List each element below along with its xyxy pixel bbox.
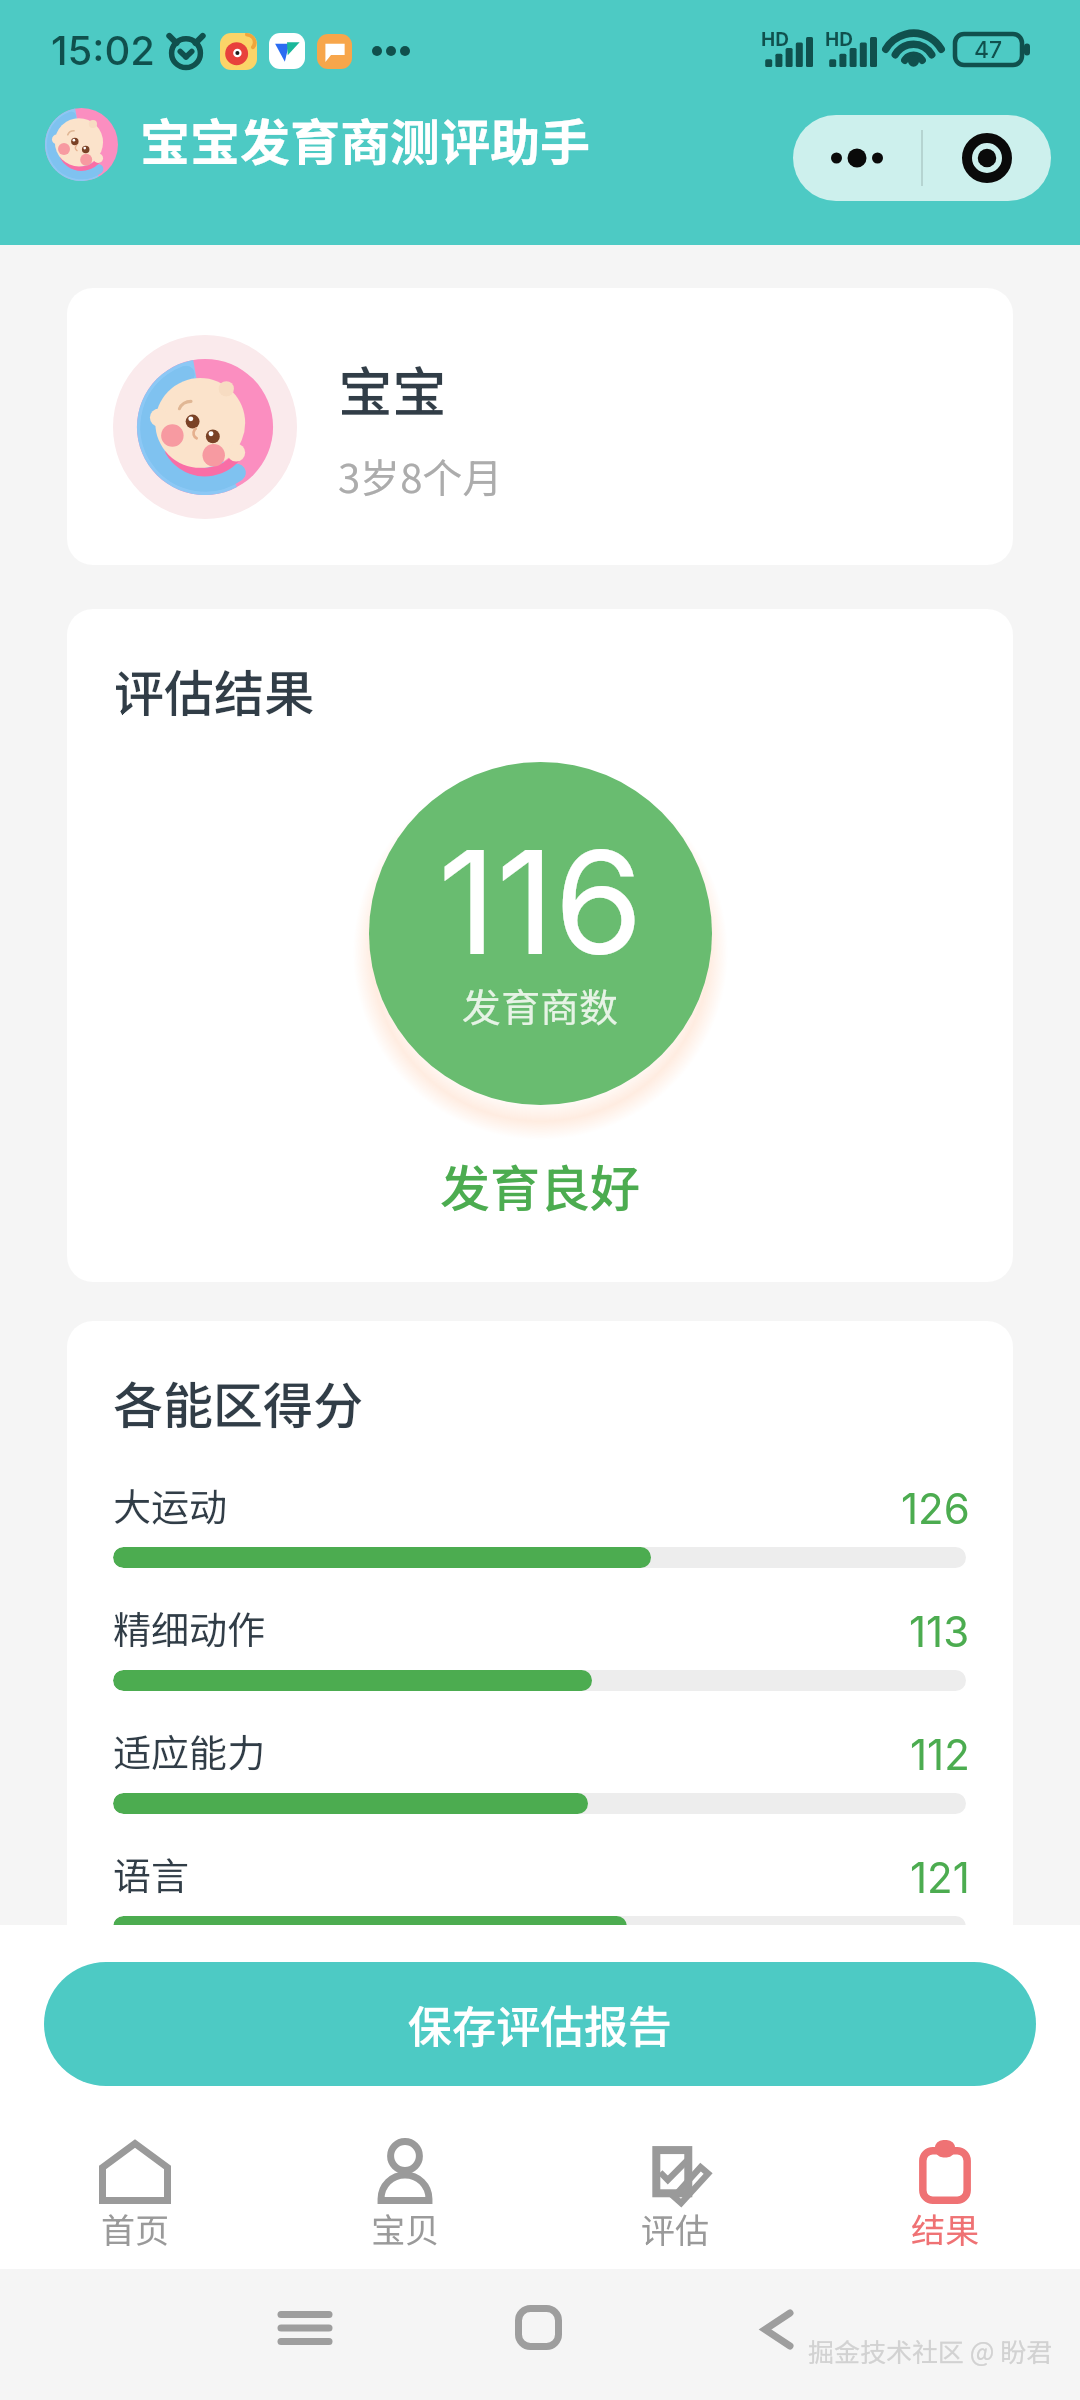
staticText: 各能区得分 [113,1366,363,1438]
button[interactable]: 宝宝 [67,288,1013,565]
staticText: 大运动 [113,1477,228,1532]
staticText: HD [825,28,853,51]
staticText: 首页 [101,2204,169,2246]
staticText: 精细动作 [113,1600,266,1655]
staticText: 评估 [641,2204,709,2246]
staticText: 宝贝 [371,2204,439,2246]
button[interactable]: Close mini program [923,133,1051,183]
staticText: HD [761,28,789,51]
staticText: 15:02 [51,26,155,74]
staticText: 126 [901,1483,970,1534]
button[interactable]: 宝贝 [270,2109,540,2269]
staticText: 发育商数 [462,977,619,1033]
staticText: 宝宝 [338,349,446,427]
staticText: 121 [910,1852,970,1903]
button[interactable]: Back [761,2309,794,2350]
button[interactable]: 保存评估报告 [44,1962,1036,2086]
button[interactable]: 首页 [0,2109,270,2269]
button[interactable]: 评估 [540,2109,810,2269]
staticText: 宝宝发育商测评助手 [140,103,590,175]
staticText: 适应能力 [113,1723,266,1778]
button[interactable]: Recent apps [281,2311,329,2345]
button[interactable]: 结果 [810,2109,1080,2269]
staticText: 3岁8个月 [338,447,503,505]
staticText: 保存评估报告 [408,1992,672,2056]
staticText: 116 [438,815,644,988]
staticText: 112 [910,1729,970,1780]
staticText: 47 [974,36,1003,64]
staticText: 发育良好 [440,1149,640,1221]
button[interactable]: More options [793,148,921,168]
staticText: 语言 [113,1846,190,1901]
staticText: 结果 [911,2204,979,2246]
button[interactable]: Home [515,2307,562,2348]
staticText: 掘金技术社区 @ 盼君 [808,2332,1053,2370]
staticText: 113 [909,1606,970,1657]
staticText: 评估结果 [114,654,314,726]
